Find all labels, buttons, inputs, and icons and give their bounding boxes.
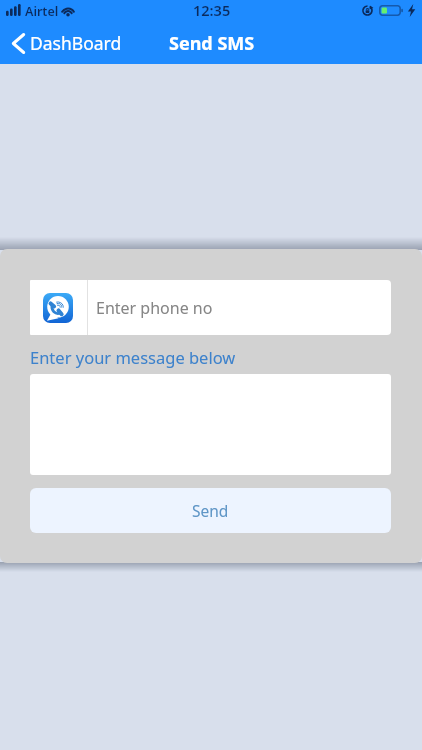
staticText: Send (192, 500, 229, 521)
staticText: Enter your message below (30, 346, 236, 368)
staticText: DashBoard (30, 31, 122, 55)
staticText: Send SMS (169, 31, 255, 56)
button[interactable]: Enter phone no (88, 280, 391, 335)
button[interactable]: Contacts (30, 280, 87, 335)
staticText: Airtel (25, 3, 59, 20)
staticText: 12:35 (193, 0, 231, 20)
button[interactable]: Back to DashBoard (0, 25, 132, 61)
button[interactable]: Send (30, 488, 391, 533)
staticText: Enter phone no (96, 297, 213, 319)
